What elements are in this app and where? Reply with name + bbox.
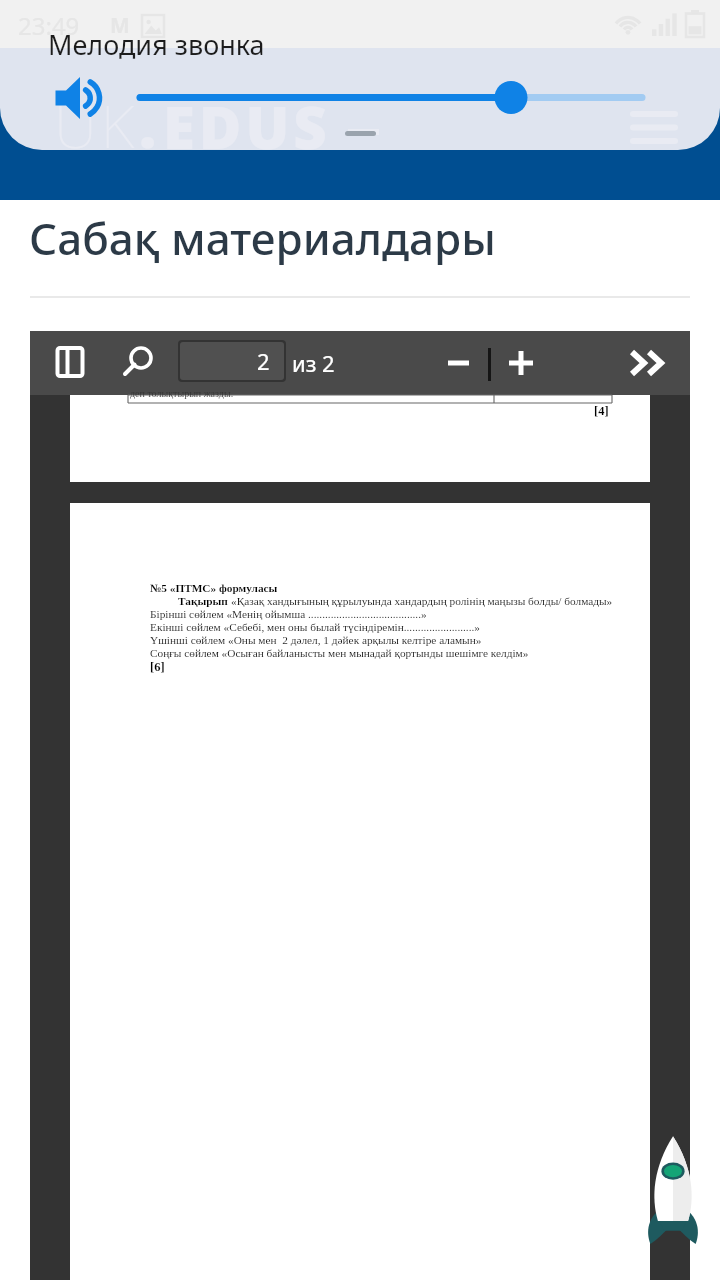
staticText: из 2 xyxy=(292,348,335,378)
button[interactable]: Sidebar xyxy=(47,339,93,385)
button[interactable]: More tools xyxy=(624,341,672,389)
staticText: «Қазақ хандығының құрылуында хандардың р… xyxy=(231,595,613,608)
staticText: [6] xyxy=(150,660,165,674)
staticText: [4] xyxy=(594,404,609,418)
button[interactable]: Search xyxy=(116,339,162,385)
staticText: M xyxy=(110,11,130,40)
button[interactable]: Zoom out xyxy=(436,341,480,385)
button[interactable]: Page number xyxy=(180,342,284,380)
button[interactable]: Menu xyxy=(624,103,684,163)
staticText: 23:49 xyxy=(18,9,80,42)
staticText: Бірінші сөйлем «Менің ойымша ...........… xyxy=(150,608,427,621)
staticText: Соңғы сөйлем «Осыған байланысты мен мына… xyxy=(150,647,529,660)
staticText: Тақырып xyxy=(178,595,231,608)
staticText: Үшінші сөйлем «Оны мен 2 дәлел, 1 дәйек … xyxy=(150,634,482,647)
staticText: №5 «ПТМС» формуласы xyxy=(150,582,278,595)
staticText: . xyxy=(139,84,163,166)
button[interactable]: Ringtone volume slider xyxy=(128,78,654,118)
button[interactable]: Mute ringtone volume xyxy=(46,71,112,125)
staticText: деп толықтырып жазды. xyxy=(130,388,234,399)
staticText: Мелодия звонка xyxy=(48,26,265,63)
button[interactable]: Scroll to top xyxy=(644,1134,702,1244)
staticText: Екінші сөйлем «Себебі, мен оны былай түс… xyxy=(150,621,480,634)
staticText: 2 xyxy=(257,346,270,376)
staticText: Сабақ материалдары xyxy=(29,208,496,268)
button[interactable]: Zoom in xyxy=(499,341,543,385)
staticText: UK xyxy=(54,84,139,166)
staticText: EDUS xyxy=(163,87,331,166)
